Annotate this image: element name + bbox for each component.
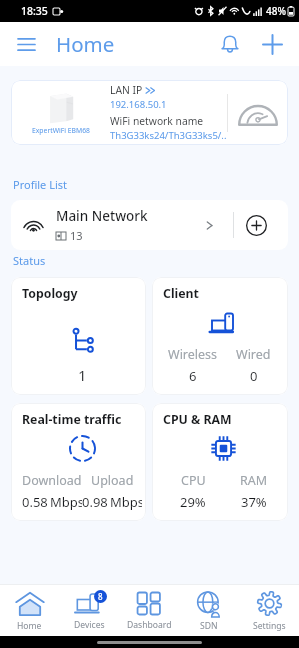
button[interactable]: Add bbox=[255, 27, 289, 61]
staticText: CPU & RAM bbox=[163, 411, 232, 428]
staticText: Th3G33ks24/Th3G33ks5/... bbox=[110, 129, 227, 142]
staticText: 48% bbox=[266, 4, 286, 18]
staticText: 192.168.50.1 bbox=[110, 98, 167, 111]
staticText: Download bbox=[22, 472, 82, 489]
staticText: Wireless bbox=[168, 346, 218, 363]
button[interactable]: Home bbox=[0, 585, 59, 636]
staticText: LAN IP bbox=[110, 83, 143, 97]
staticText: 13 bbox=[70, 228, 83, 243]
staticText: 29% bbox=[180, 493, 206, 511]
button[interactable]: 8 bbox=[59, 585, 119, 636]
button[interactable]: Add profile bbox=[246, 215, 267, 236]
staticText: Real-time traffic bbox=[22, 411, 122, 428]
staticText: ExpertWiFi EBM68 bbox=[32, 126, 90, 135]
button[interactable]: Topology bbox=[11, 277, 146, 395]
staticText: Home bbox=[56, 30, 115, 58]
staticText: WiFi network name bbox=[110, 114, 204, 128]
staticText: 6 bbox=[189, 367, 197, 385]
button[interactable]: Settings bbox=[239, 585, 299, 636]
button[interactable]: Dashboard bbox=[119, 585, 179, 636]
button[interactable]: Main Network bbox=[11, 200, 288, 250]
staticText: Main Network bbox=[56, 207, 148, 225]
button[interactable]: Real-time traffic bbox=[11, 403, 146, 521]
staticText: Client bbox=[163, 285, 199, 302]
staticText: Wired bbox=[236, 346, 271, 363]
staticText: 0.58 Mbps bbox=[22, 493, 82, 511]
staticText: Status bbox=[13, 253, 46, 268]
staticText: 0.98 Mbps bbox=[82, 493, 142, 511]
staticText: SDN bbox=[200, 620, 218, 632]
button[interactable]: Client bbox=[152, 277, 288, 395]
staticText: 0 bbox=[250, 367, 258, 385]
staticText: 8 bbox=[98, 591, 103, 602]
staticText: Topology bbox=[22, 285, 78, 302]
staticText: 37% bbox=[241, 493, 267, 511]
button[interactable]: SDN bbox=[179, 585, 239, 636]
staticText: Home bbox=[17, 620, 42, 632]
staticText: Devices bbox=[74, 619, 105, 631]
staticText: Profile List bbox=[13, 177, 67, 192]
button[interactable]: Notifications bbox=[213, 27, 247, 61]
staticText: RAM bbox=[240, 472, 268, 489]
staticText: Settings bbox=[253, 620, 286, 632]
staticText: 1 bbox=[78, 365, 87, 385]
staticText: Dashboard bbox=[127, 619, 172, 631]
button[interactable]: Menu bbox=[10, 28, 42, 60]
button[interactable]: ExpertWiFi EBM68 bbox=[11, 80, 288, 145]
staticText: 18:35 bbox=[21, 4, 48, 18]
staticText: CPU bbox=[181, 472, 206, 489]
button[interactable]: CPU & RAM bbox=[152, 403, 288, 521]
staticText: Upload bbox=[91, 472, 134, 489]
